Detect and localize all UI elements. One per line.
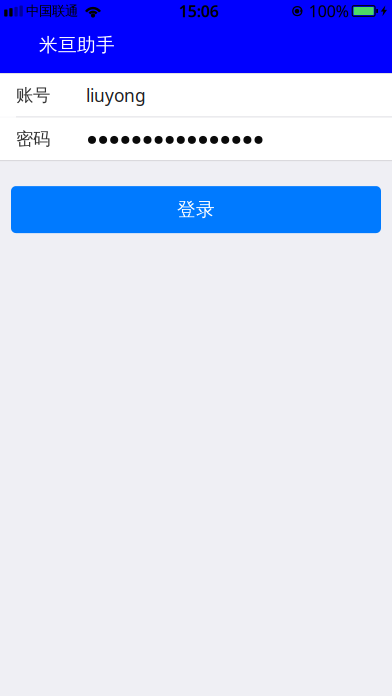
- button[interactable]: 登录: [11, 186, 381, 233]
- staticText: 中国联通: [26, 3, 78, 19]
- staticText: 15:06: [179, 0, 219, 22]
- staticText: 密码: [16, 128, 50, 150]
- staticText: 米亘助手: [39, 33, 115, 56]
- staticText: liuyong: [86, 84, 146, 107]
- button[interactable]: 密码: [0, 117, 392, 160]
- staticText: 登录: [177, 198, 215, 221]
- button[interactable]: 账号: [0, 74, 392, 117]
- staticText: 账号: [16, 85, 50, 106]
- staticText: 100%: [309, 0, 349, 22]
